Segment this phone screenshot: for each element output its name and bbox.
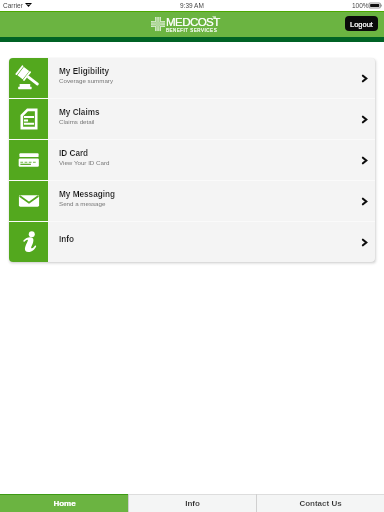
button[interactable]: ID Card bbox=[9, 140, 375, 180]
button[interactable]: My Eligibility bbox=[9, 58, 375, 98]
button[interactable]: My Messaging bbox=[9, 181, 375, 221]
button[interactable]: My Claims bbox=[9, 99, 375, 139]
staticText: Carrier bbox=[3, 2, 23, 9]
staticText: My Eligibility bbox=[59, 67, 110, 76]
staticText: Home bbox=[53, 499, 76, 508]
button[interactable]: Contact Us bbox=[256, 494, 384, 512]
staticText: Info bbox=[59, 235, 75, 244]
staticText: Claims detail bbox=[59, 118, 95, 125]
staticText: ™ bbox=[212, 15, 216, 19]
staticText: BENEFIT SERVICES bbox=[166, 28, 218, 33]
button[interactable]: Info bbox=[9, 222, 375, 262]
staticText: Logout bbox=[350, 20, 373, 28]
button[interactable]: Info bbox=[128, 494, 256, 512]
staticText: Coverage summary bbox=[59, 77, 113, 84]
button[interactable]: Home bbox=[0, 494, 128, 512]
staticText: 100% bbox=[352, 2, 369, 9]
staticText: ID Card bbox=[59, 149, 89, 158]
staticText: Contact Us bbox=[299, 499, 342, 508]
staticText: View Your ID Card bbox=[59, 159, 110, 166]
staticText: Info bbox=[185, 499, 200, 508]
staticText: My Messaging bbox=[59, 190, 115, 199]
button[interactable]: Logout bbox=[345, 16, 378, 31]
staticText: Send a message bbox=[59, 200, 106, 207]
staticText: MEDCOST bbox=[166, 15, 220, 28]
staticText: My Claims bbox=[59, 108, 100, 117]
staticText: 9:39 AM bbox=[180, 2, 204, 9]
